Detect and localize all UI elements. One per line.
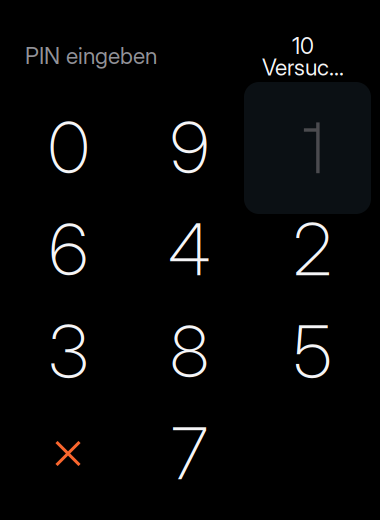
staticText: 6 [49, 205, 88, 292]
staticText: 10 [292, 32, 314, 59]
staticText: 5 [293, 307, 331, 394]
button[interactable]: 2 [250, 198, 371, 300]
staticText: Versuc… [262, 53, 344, 81]
staticText: 0 [48, 103, 89, 190]
button[interactable]: 6 [8, 198, 129, 300]
button[interactable]: 9 [129, 96, 250, 198]
button[interactable]: 4 [129, 198, 250, 300]
staticText: 2 [293, 205, 332, 292]
button[interactable]: Abbrechen [8, 402, 129, 504]
button[interactable]: 3 [8, 300, 129, 402]
staticText: 7 [171, 409, 208, 496]
staticText: 9 [170, 103, 209, 190]
staticText: PIN eingeben [25, 42, 157, 69]
button[interactable]: 8 [129, 300, 250, 402]
staticText: 8 [170, 307, 209, 394]
button[interactable]: 5 [250, 300, 371, 402]
button[interactable]: 1 [250, 96, 371, 198]
button[interactable]: 0 [8, 96, 129, 198]
button[interactable]: 7 [129, 402, 250, 504]
staticText: 3 [48, 307, 88, 394]
staticText: 4 [168, 205, 211, 292]
